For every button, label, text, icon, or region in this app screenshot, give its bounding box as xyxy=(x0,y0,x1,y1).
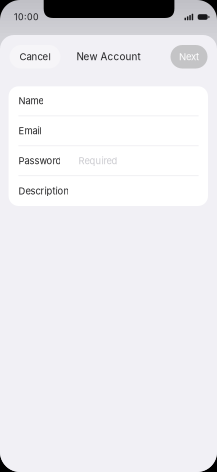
button[interactable]: Next xyxy=(170,45,207,68)
staticText: Email xyxy=(18,125,41,136)
staticText: 10:00 xyxy=(14,12,39,22)
button[interactable]: Name xyxy=(9,86,208,116)
staticText: Required xyxy=(79,155,118,166)
staticText: New Account xyxy=(76,51,140,63)
button[interactable]: Password xyxy=(9,146,208,176)
staticText: Cancel xyxy=(19,51,50,62)
button[interactable]: Description xyxy=(9,176,208,206)
button[interactable]: Email xyxy=(9,116,208,146)
staticText: Description xyxy=(18,185,69,197)
staticText: Password xyxy=(18,155,61,166)
staticText: Next xyxy=(179,51,199,62)
staticText: Name xyxy=(18,95,43,107)
button[interactable]: Cancel xyxy=(9,45,60,68)
